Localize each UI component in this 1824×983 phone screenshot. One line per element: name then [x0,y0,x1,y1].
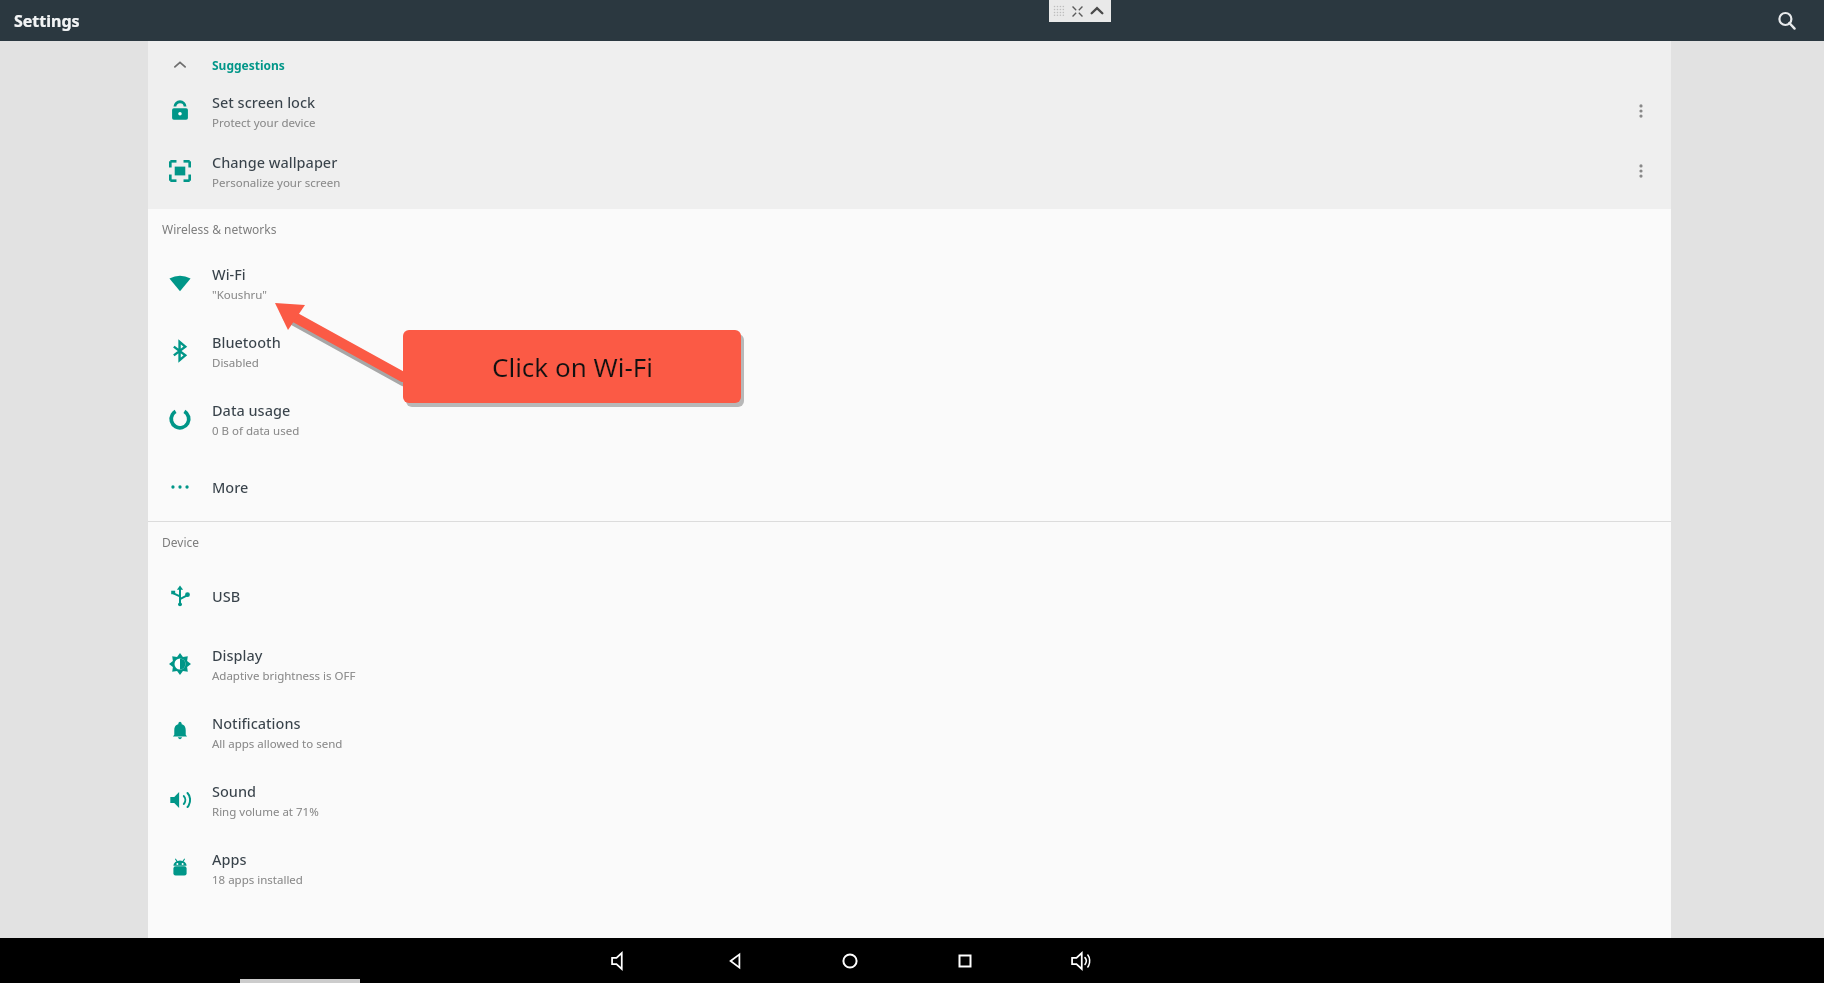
button[interactable]: More [148,453,1671,521]
staticText: 18 apps installed [212,872,303,888]
staticText: Wireless & networks [162,221,277,237]
button[interactable]: Data usage [148,385,1671,453]
staticText: "Koushru" [212,287,268,303]
staticText: Data usage [212,400,291,420]
staticText: Wi-Fi [212,264,246,284]
staticText: Click on Wi-Fi [492,349,653,384]
staticText: Adaptive brightness is OFF [212,668,356,684]
staticText: Bluetooth [212,332,281,352]
staticText: All apps allowed to send [212,736,343,752]
staticText: Settings [14,10,80,32]
button[interactable]: More options [1611,141,1671,201]
staticText: Disabled [212,355,259,371]
staticText: Set screen lock [212,92,316,112]
staticText: Display [212,645,263,665]
button[interactable]: Search [1772,6,1802,36]
staticText: USB [212,586,241,606]
button[interactable]: Notifications [148,698,1671,766]
button[interactable]: Home [830,941,870,981]
button[interactable]: Volume down [600,941,640,981]
button[interactable]: Suggestions [148,48,1671,81]
button[interactable]: Collapse [1088,2,1106,20]
staticText: Device [162,534,200,550]
staticText: More [212,477,249,497]
button[interactable]: Sound [148,766,1671,834]
button[interactable]: Display [148,630,1671,698]
staticText: Change wallpaper [212,152,338,172]
button[interactable]: More options [1611,81,1671,141]
button[interactable]: Wi-Fi [148,249,1671,317]
button[interactable]: Click on Wi-Fi [403,330,741,403]
button[interactable]: Back [715,941,755,981]
staticText: Apps [212,849,247,869]
staticText: Sound [212,781,257,801]
staticText: 0 B of data used [212,423,300,439]
staticText: Personalize your screen [212,175,341,191]
button[interactable]: Expand [1068,2,1086,20]
button[interactable]: Apps [148,834,1671,902]
button[interactable]: USB [148,562,1671,630]
button[interactable]: Volume up [1060,941,1100,981]
button[interactable]: Change wallpaper [148,141,1671,201]
staticText: Notifications [212,713,301,733]
button[interactable]: Set screen lock [148,81,1671,141]
staticText: Ring volume at 71% [212,804,319,820]
staticText: Suggestions [212,57,285,73]
staticText: Protect your device [212,115,316,131]
button[interactable]: Bluetooth [148,317,1671,385]
button[interactable]: Recents [945,941,985,981]
